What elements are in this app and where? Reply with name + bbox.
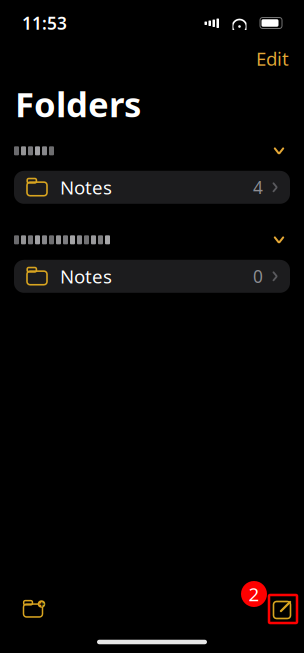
staticText: + xyxy=(39,598,44,610)
staticText: Edit xyxy=(256,46,289,71)
staticText: 11:53 xyxy=(22,11,67,34)
staticText: 2 xyxy=(248,582,259,606)
button[interactable]: Notes xyxy=(14,260,290,293)
staticText: Notes xyxy=(60,175,112,200)
staticText: 4 xyxy=(253,176,263,199)
button[interactable]: New Note xyxy=(269,595,297,623)
button[interactable]: Notes xyxy=(14,171,290,204)
staticText: 0 xyxy=(253,265,263,288)
staticText: Notes xyxy=(60,264,112,289)
button[interactable] xyxy=(0,140,304,162)
button[interactable]: Edit xyxy=(244,42,301,75)
staticText: Folders xyxy=(15,81,141,127)
button[interactable]: New Folder xyxy=(12,591,54,627)
button[interactable] xyxy=(0,229,304,251)
